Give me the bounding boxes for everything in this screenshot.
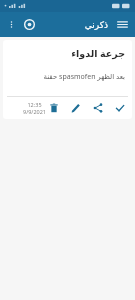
staticText: حقنة spasmofen بعد الظهر	[3, 72, 125, 82]
button[interactable]: More options	[5, 18, 18, 31]
staticText: ذكرني	[84, 20, 108, 30]
button[interactable]: جرعة الدواء	[3, 40, 132, 119]
button[interactable]: Mark done	[112, 100, 127, 116]
button[interactable]: Delete	[46, 100, 62, 116]
staticText: 12:35	[27, 101, 42, 108]
staticText: 9/9/2021	[23, 108, 46, 115]
button[interactable]: Share	[90, 100, 106, 116]
staticText: جرعة الدواء	[3, 47, 125, 60]
button[interactable]: Add reminder	[22, 17, 37, 32]
button[interactable]: Menu	[115, 17, 130, 32]
button[interactable]: Edit	[68, 100, 84, 116]
